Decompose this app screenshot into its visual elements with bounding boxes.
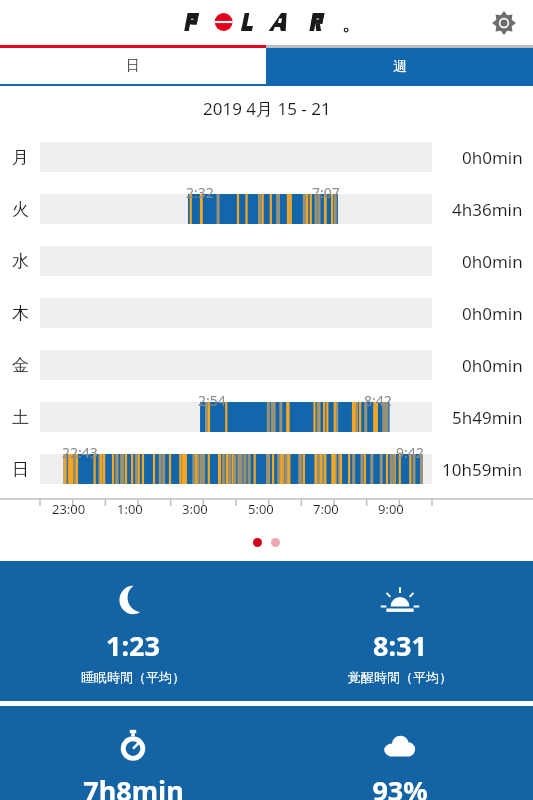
staticText: 2019 4月 15 - 21 <box>203 97 331 120</box>
button[interactable]: 週 <box>266 45 533 86</box>
staticText: 7:00 <box>313 500 339 518</box>
staticText: 1:00 <box>117 500 143 518</box>
staticText: 0h0min <box>462 302 523 325</box>
staticText: 9:00 <box>378 500 404 518</box>
staticText: 23:00 <box>52 500 86 518</box>
staticText: 日 <box>12 459 29 480</box>
staticText: 週 <box>393 58 407 76</box>
staticText: 7:07 <box>312 183 340 202</box>
button[interactable]: 7h8min <box>0 706 533 800</box>
staticText: 2:54 <box>198 391 226 410</box>
staticText: 月 <box>12 147 29 168</box>
staticText: 土 <box>12 407 29 428</box>
staticText: 5:00 <box>248 500 274 518</box>
staticText: 0h0min <box>462 354 523 377</box>
staticText: 5h49min <box>452 406 523 429</box>
staticText: 木 <box>12 303 29 324</box>
staticText: 9:42 <box>396 443 424 462</box>
staticText: 覚醒時間（平均） <box>348 669 452 685</box>
staticText: 日 <box>126 57 140 75</box>
button[interactable]: 1:23 <box>0 561 533 701</box>
staticText: 3:00 <box>182 500 208 518</box>
staticText: 火 <box>12 199 29 220</box>
staticText: 22:43 <box>62 443 98 462</box>
staticText: 水 <box>12 251 29 272</box>
button[interactable]: Settings <box>487 6 521 40</box>
staticText: 93% <box>372 772 428 800</box>
staticText: 金 <box>12 355 29 376</box>
staticText: 2:32 <box>186 183 214 202</box>
staticText: 8:42 <box>364 391 392 410</box>
staticText: 7h8min <box>83 772 184 800</box>
button[interactable]: 日 <box>0 45 266 86</box>
staticText: 睡眠時間（平均） <box>81 669 185 685</box>
staticText: 10h59min <box>442 458 523 481</box>
staticText: 1:23 <box>106 627 160 664</box>
staticText: 4h36min <box>452 198 523 221</box>
staticText: 8:31 <box>373 627 427 664</box>
staticText: 0h0min <box>462 146 523 169</box>
staticText: 0h0min <box>462 250 523 273</box>
